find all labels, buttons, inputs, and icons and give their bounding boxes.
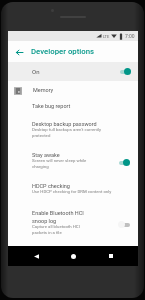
- button[interactable]: Home: [63, 246, 83, 266]
- staticText: Capture all bluetooth HCI packets in a f…: [32, 224, 90, 236]
- staticText: Developer options: [31, 47, 95, 56]
- button[interactable]: Desktop backup password: [8, 113, 138, 149]
- staticText: Enable Bluetooth HCI snoop log: [32, 210, 90, 224]
- button[interactable]: Take bug report: [8, 101, 138, 113]
- button[interactable]: On: [8, 62, 138, 81]
- button[interactable]: Switch on: [119, 67, 131, 76]
- button[interactable]: Stay awake: [8, 149, 138, 175]
- staticText: LTE: [103, 34, 110, 39]
- staticText: Use HDCP checking for DRM content only: [32, 189, 112, 194]
- staticText: Take bug report: [32, 103, 71, 109]
- button[interactable]: Back: [11, 44, 27, 60]
- button[interactable]: HDCP checking: [8, 175, 138, 204]
- staticText: HDCP checking: [32, 183, 70, 189]
- staticText: 7:00: [125, 33, 135, 39]
- button[interactable]: Enable Bluetooth HCI snoop log: [8, 204, 138, 244]
- button[interactable]: Memory: [8, 81, 138, 101]
- staticText: Memory: [33, 87, 54, 93]
- staticText: On: [32, 68, 40, 75]
- button[interactable]: Switch off: [118, 220, 130, 229]
- button[interactable]: Switch on: [118, 158, 130, 167]
- button[interactable]: Back: [26, 246, 46, 266]
- staticText: Screen will never sleep while charging: [32, 158, 90, 170]
- staticText: Stay awake: [32, 152, 60, 158]
- staticText: Desktop backup password: [32, 121, 97, 127]
- staticText: Desktop full backups aren't currently pr…: [32, 127, 114, 139]
- button[interactable]: Recent apps: [101, 246, 121, 266]
